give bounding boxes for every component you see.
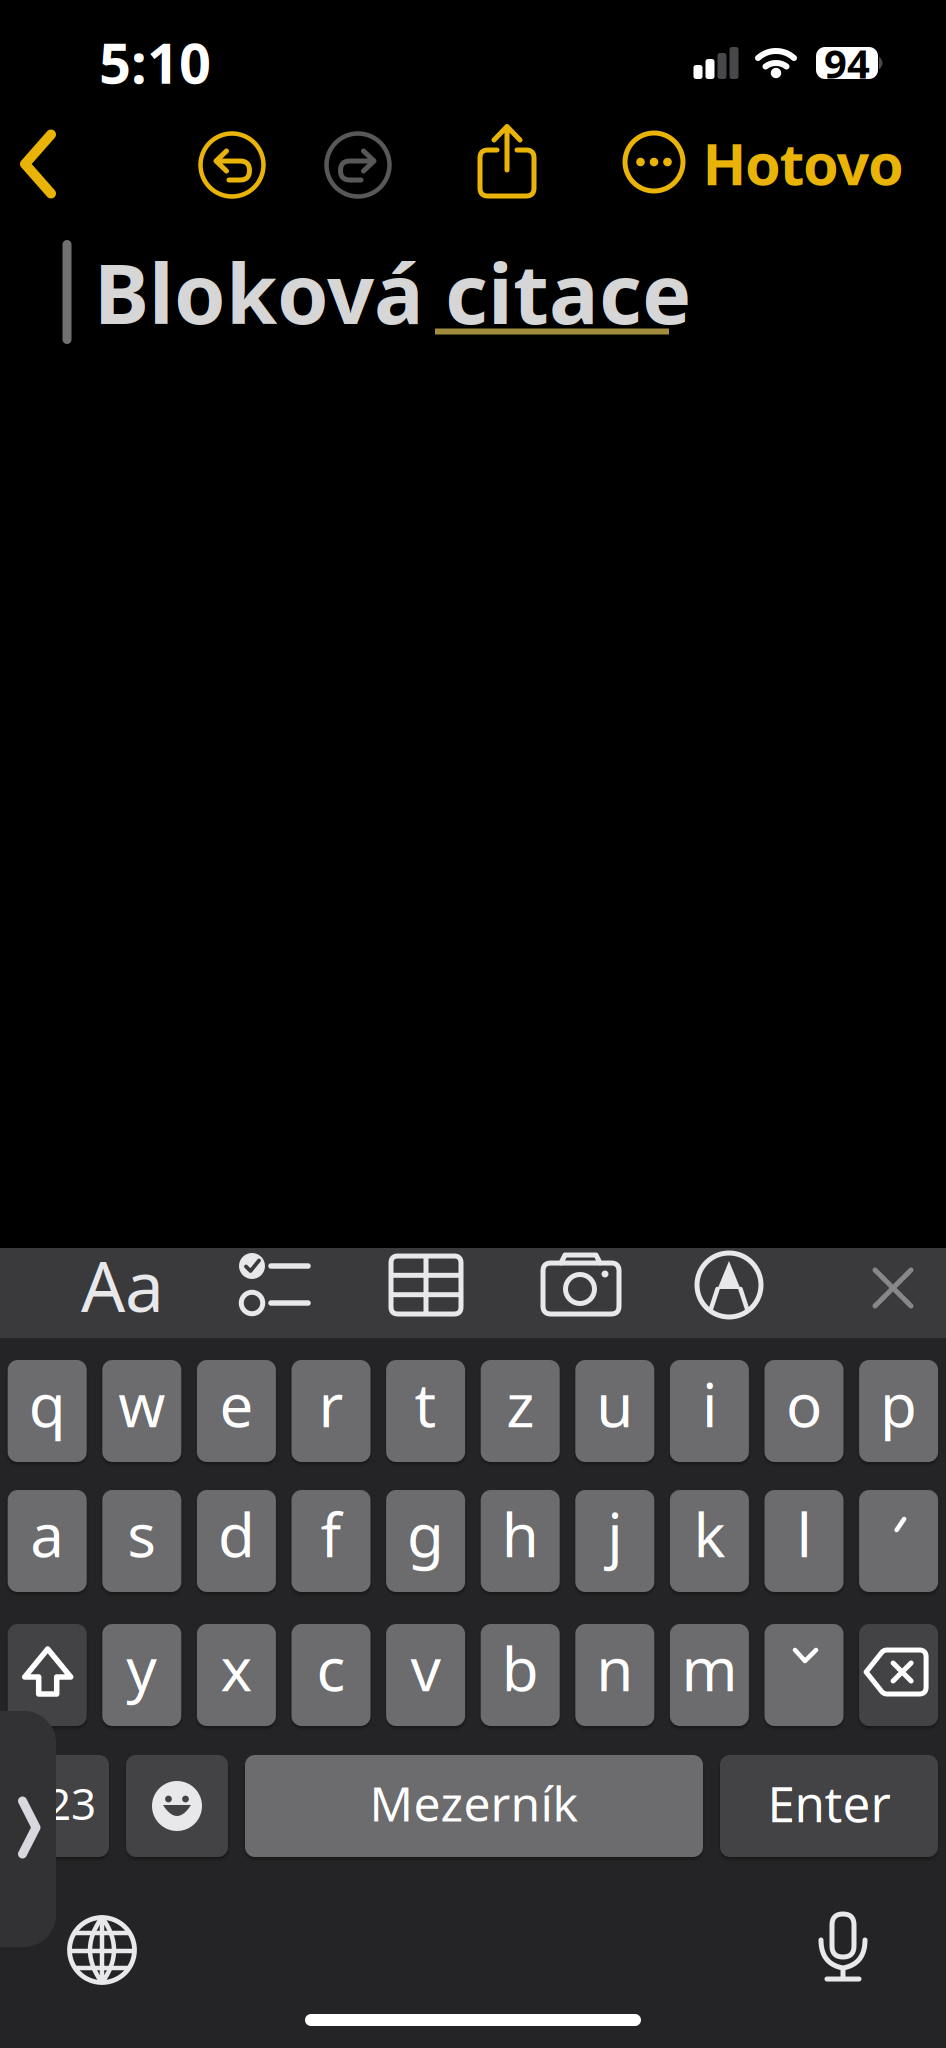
button[interactable]: a (8, 1490, 87, 1592)
staticText: 5:10 (99, 25, 211, 99)
staticText: Enter (767, 1770, 890, 1836)
staticText: b (502, 1628, 539, 1708)
button[interactable]: Expand (0, 1711, 56, 1947)
staticText: i (702, 1364, 717, 1444)
button[interactable]: o (764, 1360, 843, 1462)
staticText: n (596, 1628, 633, 1708)
button[interactable]: k (670, 1490, 749, 1592)
button[interactable]: Markup (692, 1248, 766, 1322)
button[interactable]: f (291, 1490, 370, 1592)
button[interactable]: e (197, 1360, 276, 1462)
staticText: z (506, 1364, 534, 1444)
staticText: 123 (21, 1774, 96, 1832)
button[interactable]: Undo (195, 128, 269, 202)
staticText: r (318, 1364, 343, 1444)
button[interactable]: i (670, 1360, 749, 1462)
button[interactable]: Checklist (236, 1250, 312, 1320)
staticText: g (407, 1494, 444, 1574)
button[interactable]: More (622, 130, 686, 194)
button[interactable]: u (575, 1360, 654, 1462)
staticText: w (118, 1364, 165, 1444)
staticText: Aa (81, 1239, 164, 1331)
button[interactable]: l (764, 1490, 843, 1592)
button[interactable]: Emoji (126, 1755, 228, 1857)
button[interactable]: Mezerník (245, 1755, 703, 1857)
button[interactable]: b (481, 1624, 560, 1726)
staticText: y (126, 1628, 157, 1708)
staticText: Bloková citace (94, 237, 691, 347)
button[interactable]: g (386, 1490, 465, 1592)
button[interactable]: z (481, 1360, 560, 1462)
button[interactable]: ˇ caron (764, 1624, 843, 1726)
button[interactable]: c (291, 1624, 370, 1726)
button[interactable]: Shift (8, 1624, 87, 1726)
button[interactable]: m (670, 1624, 749, 1726)
staticText: s (127, 1494, 156, 1574)
staticText: e (219, 1364, 253, 1444)
button[interactable]: v (386, 1624, 465, 1726)
button[interactable]: Enter (720, 1755, 938, 1857)
button[interactable]: Dismiss keyboard (870, 1265, 916, 1311)
staticText: u (596, 1364, 633, 1444)
staticText: 94 (824, 36, 870, 89)
staticText: x (220, 1628, 252, 1708)
button[interactable]: x (197, 1624, 276, 1726)
staticText: v (411, 1628, 441, 1708)
button[interactable]: p (859, 1360, 938, 1462)
staticText: k (693, 1494, 725, 1574)
button[interactable]: y (102, 1624, 181, 1726)
button[interactable]: t (386, 1360, 465, 1462)
button[interactable]: Redo (321, 128, 395, 202)
button[interactable]: Share (477, 123, 537, 199)
button[interactable]: Dictate (810, 1912, 876, 1982)
staticText: Hotovo (702, 125, 904, 201)
staticText: h (502, 1494, 539, 1574)
button[interactable]: d (197, 1490, 276, 1592)
button[interactable]: Hotovo (702, 125, 904, 201)
staticText: j (607, 1494, 622, 1574)
button[interactable]: Table (386, 1251, 466, 1319)
button[interactable]: q (8, 1360, 87, 1462)
button[interactable]: Next keyboard (66, 1914, 138, 1986)
staticText: q (29, 1364, 66, 1444)
staticText: l (796, 1494, 811, 1574)
button[interactable]: Delete (859, 1624, 938, 1726)
button[interactable]: Format (81, 1239, 164, 1331)
button[interactable]: r (291, 1360, 370, 1462)
button[interactable]: ´ accent (859, 1490, 938, 1592)
button[interactable]: Back (18, 129, 62, 199)
button[interactable]: w (102, 1360, 181, 1462)
button[interactable]: Camera (538, 1251, 624, 1321)
staticText: a (30, 1494, 64, 1574)
staticText: c (316, 1628, 345, 1708)
button[interactable]: j (575, 1490, 654, 1592)
button[interactable]: 123 (8, 1755, 109, 1857)
staticText: f (320, 1494, 341, 1574)
staticText: o (786, 1364, 822, 1444)
staticText: m (681, 1628, 737, 1708)
button[interactable]: h (481, 1490, 560, 1592)
staticText: t (415, 1364, 437, 1444)
staticText: d (218, 1494, 255, 1574)
button[interactable]: s (102, 1490, 181, 1592)
staticText: Mezerník (369, 1771, 578, 1835)
staticText: p (880, 1364, 917, 1444)
button[interactable]: n (575, 1624, 654, 1726)
